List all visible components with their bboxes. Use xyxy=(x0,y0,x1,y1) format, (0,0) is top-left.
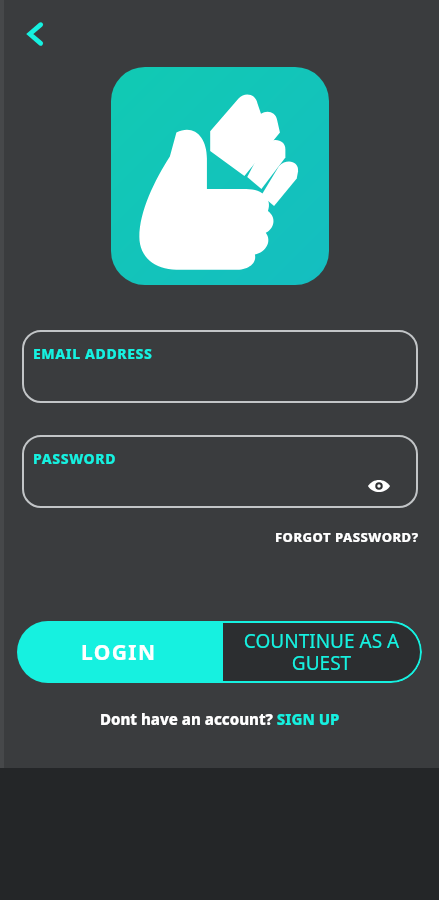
button[interactable]: LOGIN xyxy=(17,621,221,683)
button[interactable]: FORGOT PASSWORD? xyxy=(269,525,439,549)
button[interactable]: COUNTINUE AS A GUEST xyxy=(221,621,422,683)
staticText: FORGOT PASSWORD? xyxy=(275,528,419,546)
button[interactable]: PASSWORD xyxy=(22,435,418,508)
staticText: EMAIL ADDRESS xyxy=(33,344,153,363)
button[interactable]: Back xyxy=(13,12,57,56)
staticText: Dont have an account? SIGN UP xyxy=(100,709,340,729)
button[interactable]: EMAIL ADDRESS xyxy=(22,330,418,403)
button[interactable]: Dont have an account? SIGN UP xyxy=(94,703,346,735)
staticText: COUNTINUE AS A GUEST xyxy=(233,628,410,676)
staticText: PASSWORD xyxy=(33,449,117,468)
staticText: LOGIN xyxy=(81,638,157,667)
button[interactable]: Show password xyxy=(364,471,394,501)
